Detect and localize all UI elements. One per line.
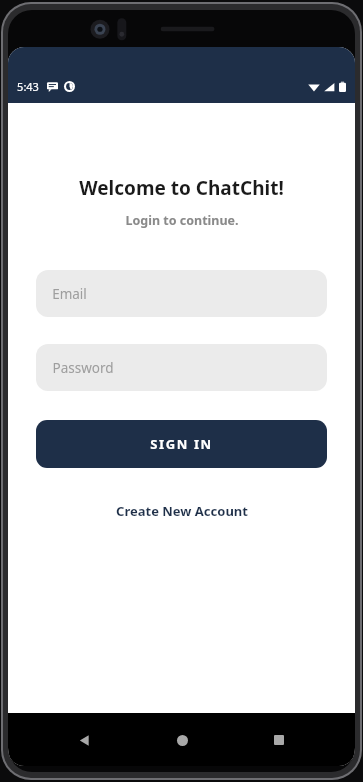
button[interactable]: Back: [62, 718, 106, 762]
button[interactable]: SIGN IN: [36, 420, 327, 468]
staticText: SIGN IN: [150, 435, 213, 453]
button[interactable]: Create New Account: [108, 497, 256, 525]
staticText: Create New Account: [116, 502, 248, 520]
button[interactable]: Home: [160, 718, 204, 762]
staticText: Email: [52, 285, 87, 303]
button[interactable]: Email: [36, 270, 327, 317]
button[interactable]: Password: [36, 344, 327, 391]
staticText: Welcome to ChatChit!: [79, 175, 284, 201]
staticText: Login to continue.: [125, 212, 239, 229]
staticText: Password: [52, 359, 114, 377]
staticText: 5:43: [17, 79, 39, 94]
button[interactable]: Recent apps: [257, 718, 301, 762]
